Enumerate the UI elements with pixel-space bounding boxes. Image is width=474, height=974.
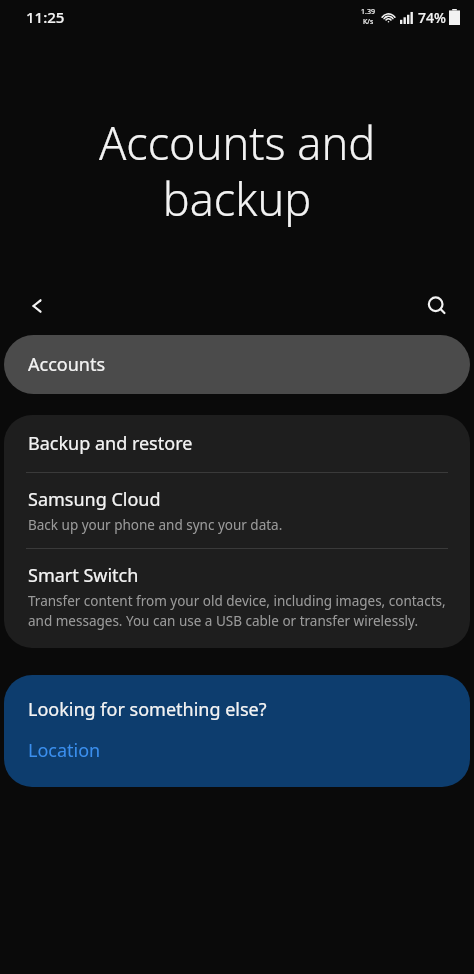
staticText: K/s (363, 17, 374, 27)
button[interactable]: Location (28, 738, 101, 763)
staticText: 11:25 (26, 7, 65, 27)
staticText: Backup and restore (28, 431, 193, 456)
button[interactable]: Back (14, 283, 60, 329)
button[interactable]: Accounts (4, 335, 470, 394)
staticText: Accounts (28, 352, 106, 377)
staticText: 74% (418, 8, 446, 27)
staticText: Looking for something else? (28, 697, 267, 722)
button[interactable]: Backup and restore (4, 415, 470, 472)
staticText: Back up your phone and sync your data. (28, 516, 283, 534)
button[interactable]: Smart Switch (4, 549, 470, 648)
button[interactable]: Search (414, 283, 460, 329)
staticText: Transfer content from your old device, i… (28, 592, 450, 630)
staticText: Smart Switch (28, 563, 139, 588)
staticText: Accounts and backup (36, 112, 438, 229)
staticText: Location (28, 738, 101, 763)
staticText: 1.39 (361, 7, 375, 17)
staticText: Samsung Cloud (28, 487, 161, 512)
button[interactable]: Samsung Cloud (4, 473, 470, 548)
